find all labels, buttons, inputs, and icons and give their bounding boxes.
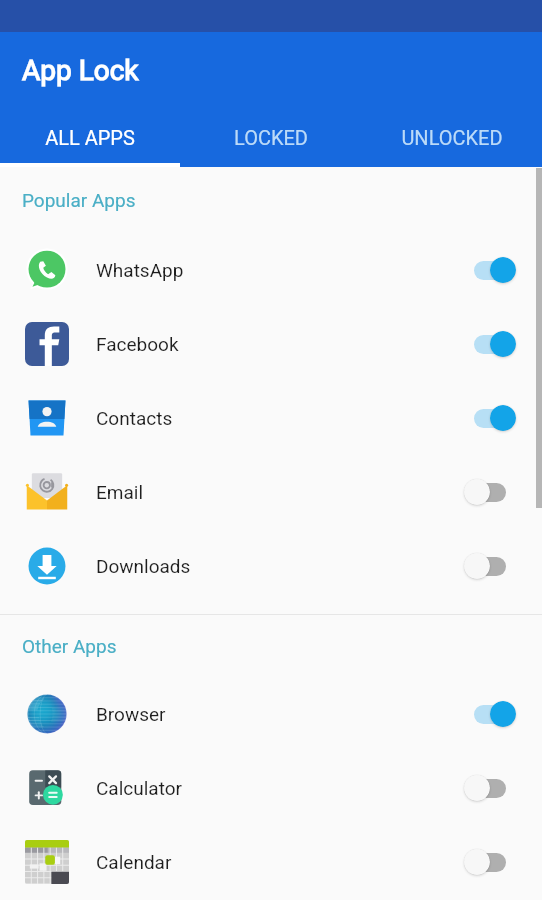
button[interactable]: Calculator <box>0 751 542 825</box>
staticText: Downloads <box>96 555 191 577</box>
staticText: LOCKED <box>234 126 308 149</box>
button[interactable]: Lock Downloads <box>464 549 516 583</box>
button[interactable]: WhatsApp <box>0 233 542 307</box>
staticText: Calculator <box>96 777 183 799</box>
button[interactable]: Calendar <box>0 825 542 899</box>
staticText: Browser <box>96 703 166 725</box>
staticText: Popular Apps <box>22 189 136 211</box>
staticText: App Lock <box>22 54 139 87</box>
button[interactable]: Facebook <box>0 307 542 381</box>
button[interactable]: Email <box>0 455 542 529</box>
staticText: Contacts <box>96 407 173 429</box>
staticText: ALL APPS <box>45 126 135 149</box>
button[interactable]: Lock WhatsApp <box>464 253 516 287</box>
button[interactable]: Lock Calculator <box>464 771 516 805</box>
button[interactable]: Lock Calendar <box>464 845 516 879</box>
staticText: WhatsApp <box>96 259 184 281</box>
button[interactable]: Lock Contacts <box>464 401 516 435</box>
staticText: Facebook <box>96 333 179 355</box>
button[interactable]: Contacts <box>0 381 542 455</box>
button[interactable]: UNLOCKED <box>361 117 542 167</box>
button[interactable]: Lock Facebook <box>464 327 516 361</box>
button[interactable]: ALL APPS <box>0 117 180 167</box>
button[interactable]: Lock Browser <box>464 697 516 731</box>
button[interactable]: LOCKED <box>180 117 361 167</box>
button[interactable]: Browser <box>0 677 542 751</box>
button[interactable]: Lock Email <box>464 475 516 509</box>
staticText: Email <box>96 481 144 503</box>
staticText: Calendar <box>96 851 172 873</box>
button[interactable]: Downloads <box>0 529 542 603</box>
staticText: UNLOCKED <box>401 126 503 149</box>
staticText: Other Apps <box>22 635 117 657</box>
